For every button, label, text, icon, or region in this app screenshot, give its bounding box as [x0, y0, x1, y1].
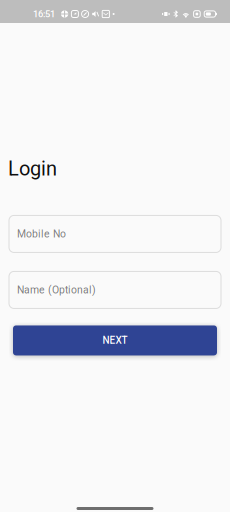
button[interactable]: NEXT	[13, 325, 217, 355]
staticText: Login	[8, 157, 57, 180]
button[interactable]: Name (Optional)	[9, 271, 221, 308]
staticText: 16:51	[33, 8, 55, 19]
staticText: Name (Optional)	[17, 284, 96, 296]
button[interactable]: Mobile No	[9, 215, 221, 252]
staticText: NEXT	[102, 335, 127, 346]
staticText: Mobile No	[17, 228, 66, 240]
